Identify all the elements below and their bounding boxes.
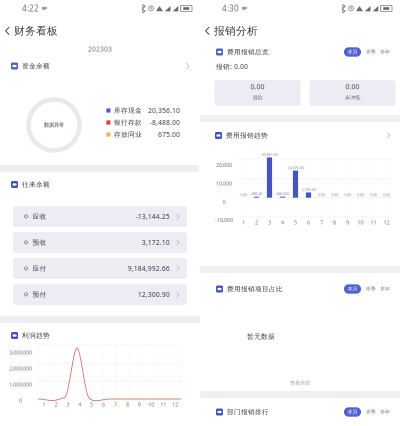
staticText: 448.000 [276, 191, 289, 196]
button[interactable]: 本月 [344, 284, 361, 294]
button[interactable]: 本年 [380, 407, 390, 417]
staticText: 银行存款 [114, 118, 142, 127]
staticText: 9 [346, 219, 349, 226]
button[interactable]: 本年 [380, 284, 390, 294]
button[interactable]: Back [200, 21, 266, 41]
button[interactable]: 费用报销趋势 [199, 129, 400, 142]
staticText: 库存现金 [114, 106, 142, 115]
staticText: 0.00 [383, 192, 390, 197]
staticText: 0.00 [370, 192, 377, 197]
staticText: 2 [255, 219, 258, 226]
staticText: 4:30 [222, 3, 239, 14]
staticText: 3 [66, 401, 69, 408]
staticText: 本季 [365, 49, 375, 55]
staticText: 3 [268, 219, 271, 226]
staticText: 12 [383, 219, 389, 226]
staticText: 往来余额 [22, 180, 50, 189]
staticText: 本年 [380, 49, 390, 55]
staticText: 14,076.00 [287, 165, 303, 170]
staticText: 1 [242, 219, 245, 226]
staticText: 存放同业 [114, 130, 142, 139]
staticText: 6 [307, 219, 310, 226]
staticText: 4 [281, 219, 284, 226]
staticText: 10,000 [216, 180, 232, 187]
staticText: 本年 [380, 409, 390, 415]
staticText: 报销: 0.00 [216, 62, 248, 71]
staticText: 10 [148, 401, 154, 408]
button[interactable]: 应付 [13, 258, 187, 279]
staticText: 9,184,992.66 [128, 264, 170, 273]
staticText: 11 [160, 401, 166, 408]
staticText: 0.00 [250, 82, 264, 91]
staticText: 0.00 [318, 192, 325, 197]
staticText: 5 [294, 219, 297, 226]
staticText: 0.00 [357, 192, 364, 197]
staticText: 9 [138, 401, 141, 408]
button[interactable]: 本年 [380, 47, 390, 57]
button[interactable]: 本季 [365, 284, 375, 294]
staticText: 7 [320, 219, 323, 226]
staticText: 0.00 [331, 192, 338, 197]
button[interactable]: Back [0, 21, 66, 41]
staticText: 0.00 [344, 192, 351, 197]
staticText: 本月 [347, 49, 357, 55]
staticText: 本季 [365, 286, 375, 292]
staticText: 费用报销项目占比 [227, 285, 283, 293]
staticText: 8 [333, 219, 336, 226]
staticText: 预付 [32, 290, 46, 299]
staticText: 675.00 [158, 130, 180, 139]
staticText: 20,000 [216, 161, 232, 169]
staticText: 11 [370, 219, 376, 226]
button[interactable]: 预收 [13, 232, 187, 253]
staticText: 20,356.10 [148, 106, 180, 115]
staticText: 本季 [365, 409, 375, 415]
staticText: 8 [126, 401, 129, 408]
button[interactable]: 应收 [13, 206, 187, 227]
staticText: 应收 [32, 212, 46, 221]
staticText: 5 [90, 401, 93, 408]
button[interactable]: 本月 [344, 47, 361, 57]
staticText: 报销分析 [214, 24, 258, 37]
staticText: 2,705.40 [301, 187, 315, 192]
staticText: 20,861.60 [261, 152, 277, 157]
staticText: 财务看板 [14, 24, 58, 37]
staticText: 利润趋势 [22, 331, 50, 340]
staticText: 1,000,000 [9, 381, 32, 388]
staticText: 1 [42, 401, 45, 408]
staticText: 本月 [347, 286, 357, 292]
staticText: 预收 [32, 238, 46, 247]
staticText: 6 [102, 401, 105, 408]
staticText: -10,000 [215, 216, 233, 223]
button[interactable]: 预付 [13, 284, 187, 305]
staticText: 202303 [88, 45, 112, 53]
staticText: 0.00 [345, 82, 359, 91]
staticText: 10 [357, 219, 363, 226]
staticText: 资金余额 [22, 62, 50, 70]
staticText: 未冲抵 [345, 94, 360, 101]
staticText: 12 [172, 401, 178, 408]
staticText: 4 [78, 401, 81, 408]
staticText: 借款 [252, 94, 262, 101]
staticText: 本年 [380, 286, 390, 292]
staticText: 费用报销趋势 [226, 131, 268, 140]
staticText: 0 [222, 198, 225, 205]
button[interactable]: 查看全部 [200, 377, 400, 389]
button[interactable]: 本季 [365, 47, 375, 57]
staticText: 查看全部 [290, 380, 310, 386]
staticText: 7 [114, 401, 117, 408]
button[interactable]: 资金余额 [0, 59, 200, 73]
staticText: 3,000,000 [9, 349, 32, 356]
staticText: 0 [19, 397, 22, 404]
button[interactable]: 本月 [344, 407, 361, 417]
staticText: 488.40 [251, 191, 262, 196]
button[interactable]: 本季 [365, 407, 375, 417]
staticText: 数据异常 [44, 122, 64, 128]
staticText: 2 [54, 401, 57, 408]
staticText: 12,300.90 [138, 290, 170, 299]
staticText: 费用报销总览 [227, 48, 269, 56]
staticText: 2,000,000 [9, 365, 32, 372]
staticText: 暂无数据 [247, 332, 275, 341]
staticText: 4:22 [22, 3, 39, 14]
staticText: 3,172.10 [142, 238, 170, 247]
staticText: 0.00 [240, 192, 247, 197]
